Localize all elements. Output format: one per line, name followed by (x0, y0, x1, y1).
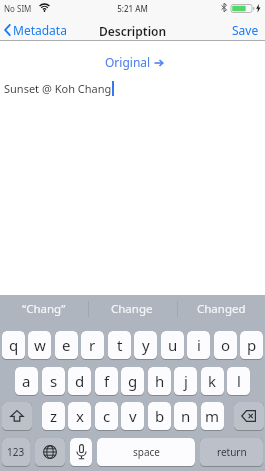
staticText: g (128, 371, 138, 391)
staticText: Changed (197, 301, 246, 317)
button[interactable]: t (108, 331, 131, 360)
staticText: 5:21 AM (0, 3, 265, 14)
button[interactable]: c (95, 402, 118, 431)
button[interactable]: 123 (2, 438, 30, 467)
staticText: 123 (7, 445, 25, 459)
staticText: k (208, 371, 217, 391)
staticText: z (50, 406, 58, 426)
staticText: space (133, 445, 160, 459)
button[interactable]: f (95, 367, 118, 396)
button[interactable]: o (214, 331, 237, 360)
staticText: u (168, 335, 178, 355)
button[interactable]: return (200, 438, 263, 467)
staticText: n (181, 406, 191, 426)
staticText: Save (232, 22, 259, 38)
button[interactable]: d (68, 367, 91, 396)
button[interactable] (35, 438, 65, 467)
button[interactable]: i (187, 331, 210, 360)
button[interactable]: s (42, 367, 65, 396)
button[interactable]: l (227, 367, 250, 396)
staticText: “Chang” (22, 301, 66, 317)
staticText: r (89, 335, 96, 355)
button[interactable]: q (2, 331, 25, 360)
staticText: Description (0, 23, 265, 39)
staticText: j (184, 371, 188, 391)
button[interactable]: k (201, 367, 224, 396)
button[interactable]: u (161, 331, 184, 360)
staticText: Original (105, 54, 151, 70)
staticText: s (50, 371, 58, 391)
button[interactable] (2, 402, 32, 431)
button[interactable] (234, 402, 264, 431)
button[interactable]: Changed (177, 295, 265, 323)
staticText: No SIM (4, 3, 32, 14)
staticText: h (155, 371, 165, 391)
staticText: w (34, 335, 46, 355)
staticText: a (22, 371, 31, 391)
button[interactable]: h (148, 367, 171, 396)
button[interactable]: p (240, 331, 263, 360)
button[interactable] (70, 438, 92, 467)
staticText: x (76, 406, 84, 426)
staticText: d (75, 371, 85, 391)
staticText: o (221, 335, 231, 355)
staticText: i (197, 335, 201, 355)
button[interactable]: e (55, 331, 78, 360)
staticText: v (129, 406, 137, 426)
button[interactable]: w (28, 331, 51, 360)
staticText: Change (111, 301, 153, 317)
button[interactable]: a (15, 367, 38, 396)
staticText: return (217, 445, 247, 459)
button[interactable]: b (148, 402, 171, 431)
staticText: Metadata (13, 22, 67, 38)
button[interactable]: y (134, 331, 157, 360)
button[interactable]: space (97, 438, 195, 467)
button[interactable]: Original (0, 54, 265, 70)
staticText: c (103, 406, 111, 426)
button[interactable]: x (68, 402, 91, 431)
button[interactable]: v (121, 402, 144, 431)
staticText: f (104, 371, 110, 391)
staticText: b (155, 406, 165, 426)
staticText: m (205, 406, 220, 426)
staticText: y (142, 335, 150, 355)
button[interactable]: m (201, 402, 224, 431)
button[interactable]: r (81, 331, 104, 360)
button[interactable]: Metadata (4, 20, 67, 40)
staticText: Sunset @ Koh Chang (4, 81, 112, 96)
staticText: l (237, 371, 241, 391)
button[interactable]: Save (232, 20, 259, 40)
button[interactable]: Change (88, 295, 176, 323)
button[interactable]: n (174, 402, 197, 431)
staticText: t (117, 335, 123, 355)
staticText: q (9, 335, 19, 355)
staticText: p (247, 335, 257, 355)
button[interactable]: j (174, 367, 197, 396)
button[interactable]: “Chang” (0, 295, 88, 323)
button[interactable]: g (121, 367, 144, 396)
staticText: e (62, 335, 71, 355)
button[interactable]: z (42, 402, 65, 431)
